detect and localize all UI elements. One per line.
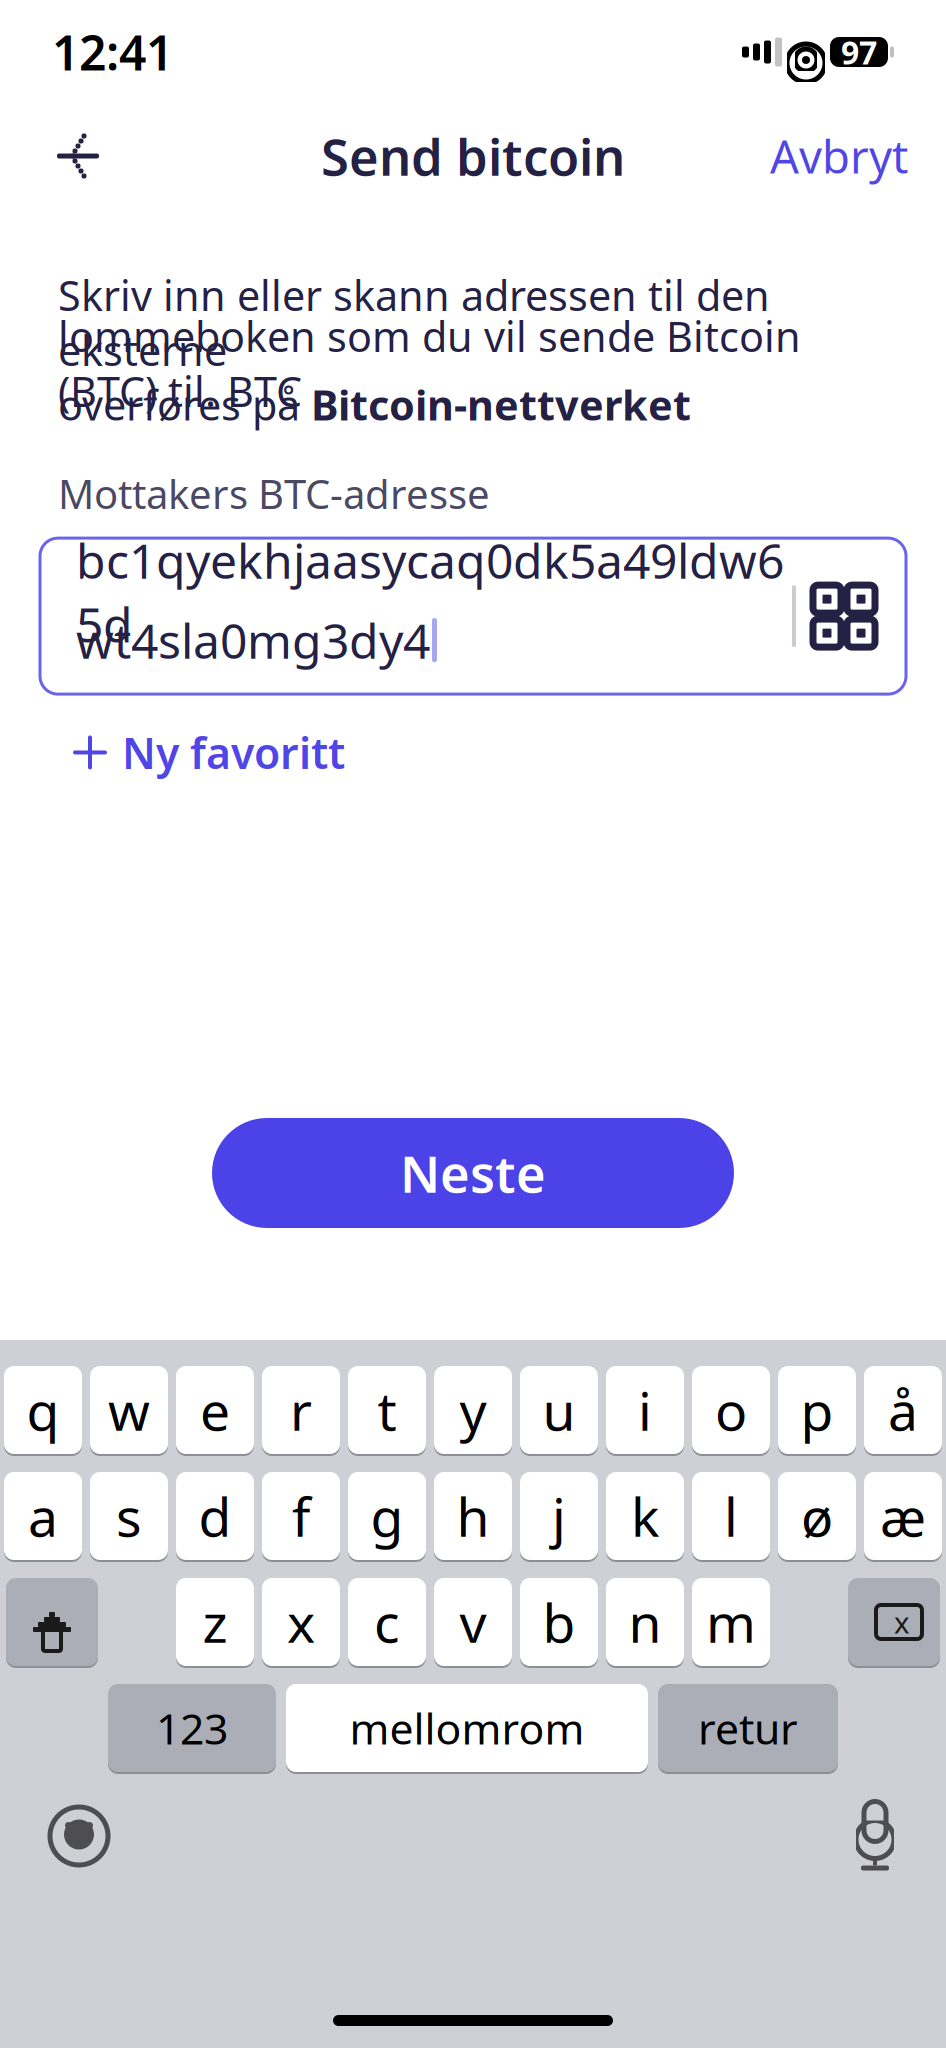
button[interactable]: d xyxy=(176,1470,254,1562)
button[interactable]: r xyxy=(262,1364,340,1456)
button[interactable]: o xyxy=(692,1364,770,1456)
button[interactable]: retur xyxy=(658,1682,838,1774)
button[interactable]: z xyxy=(176,1576,254,1668)
staticText: w xyxy=(108,1375,150,1445)
button[interactable]: p xyxy=(778,1364,856,1456)
button[interactable]: f xyxy=(262,1470,340,1562)
button[interactable]: v xyxy=(434,1576,512,1668)
button[interactable]: Neste xyxy=(212,1118,734,1228)
button[interactable]: b xyxy=(520,1576,598,1668)
button[interactable]: l xyxy=(692,1470,770,1562)
button[interactable]: a xyxy=(4,1470,82,1562)
staticText: h xyxy=(456,1481,489,1551)
staticText: å xyxy=(888,1375,918,1445)
button[interactable]: s xyxy=(90,1470,168,1562)
button[interactable]: Back xyxy=(38,125,108,187)
staticText: y xyxy=(459,1375,486,1445)
button[interactable]: æ xyxy=(864,1470,942,1562)
staticText: v xyxy=(459,1587,486,1657)
button[interactable]: w xyxy=(90,1364,168,1456)
staticText: c xyxy=(374,1587,400,1657)
button[interactable]: Emoji keyboard xyxy=(48,1805,110,1867)
staticText: overføres på xyxy=(58,377,311,432)
staticText: Neste xyxy=(400,1139,546,1207)
staticText: a xyxy=(28,1481,58,1551)
staticText: p xyxy=(800,1375,833,1445)
staticText: q xyxy=(26,1375,59,1445)
button[interactable]: e xyxy=(176,1364,254,1456)
staticText: z xyxy=(202,1587,227,1657)
button[interactable]: u xyxy=(520,1364,598,1456)
staticText: æ xyxy=(880,1481,926,1551)
button[interactable]: g xyxy=(348,1470,426,1562)
button[interactable]: n xyxy=(606,1576,684,1668)
staticText: retur xyxy=(698,1700,798,1756)
button[interactable]: x xyxy=(262,1576,340,1668)
button[interactable]: Dictation xyxy=(852,1800,898,1872)
staticText: o xyxy=(715,1375,747,1445)
staticText: n xyxy=(628,1587,661,1657)
button[interactable]: Scan QR code xyxy=(796,561,892,671)
staticText: mellomrom xyxy=(349,1700,584,1756)
button[interactable]: j xyxy=(520,1470,598,1562)
staticText: d xyxy=(198,1481,231,1551)
staticText: m xyxy=(706,1587,756,1657)
button[interactable]: i xyxy=(606,1364,684,1456)
staticText: Bitcoin-nettverket xyxy=(311,377,691,432)
staticText: g xyxy=(370,1481,403,1551)
staticText: wt4sla0mg3dy4 xyxy=(76,608,430,672)
button[interactable]: Shift xyxy=(6,1576,98,1668)
button[interactable]: å xyxy=(864,1364,942,1456)
staticText: Send bitcoin xyxy=(321,122,625,190)
staticText: k xyxy=(631,1481,659,1551)
staticText: Mottakers BTC-adresse xyxy=(58,467,490,520)
button[interactable]: c xyxy=(348,1576,426,1668)
staticText: i xyxy=(638,1375,652,1445)
button[interactable]: h xyxy=(434,1470,512,1562)
staticText: 12:41 xyxy=(52,20,173,84)
staticText: Ny favoritt xyxy=(122,724,345,781)
button[interactable]: q xyxy=(4,1364,82,1456)
staticText: e xyxy=(200,1375,230,1445)
button[interactable]: Delete xyxy=(848,1576,940,1668)
button[interactable]: 123 xyxy=(108,1682,276,1774)
button[interactable]: y xyxy=(434,1364,512,1456)
staticText: f xyxy=(292,1481,310,1551)
button[interactable]: mellomrom xyxy=(286,1682,648,1774)
staticText: r xyxy=(290,1375,312,1445)
staticText: j xyxy=(552,1481,566,1551)
staticText: x xyxy=(894,1602,910,1641)
button[interactable]: Avbryt xyxy=(770,125,908,187)
staticText: ø xyxy=(801,1481,833,1551)
staticText: bc1qyekhjaasycaq0dk5a49ldw65d xyxy=(76,528,784,656)
staticText: l xyxy=(724,1481,738,1551)
staticText: lommeboken som du vil sende Bitcoin (BTC… xyxy=(58,309,801,418)
staticText: Avbryt xyxy=(770,126,908,186)
staticText: s xyxy=(116,1481,142,1551)
staticText: 97 xyxy=(841,31,877,73)
staticText: u xyxy=(542,1375,575,1445)
button[interactable]: ø xyxy=(778,1470,856,1562)
staticText: Skriv inn eller skann adressen til den e… xyxy=(58,268,770,377)
button[interactable]: t xyxy=(348,1364,426,1456)
button[interactable]: m xyxy=(692,1576,770,1668)
staticText: b xyxy=(542,1587,575,1657)
staticText: t xyxy=(377,1375,396,1445)
button[interactable]: k xyxy=(606,1470,684,1562)
staticText: 123 xyxy=(156,1700,228,1756)
button[interactable]: Ny favoritt xyxy=(72,716,345,789)
staticText: x xyxy=(287,1587,315,1657)
